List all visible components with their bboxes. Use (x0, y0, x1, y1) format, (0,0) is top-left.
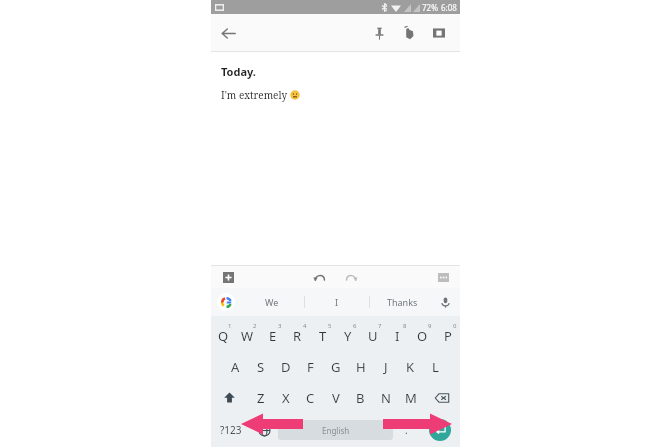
staticText: X (282, 389, 290, 407)
staticText: H (356, 358, 366, 376)
button[interactable]: M (398, 382, 423, 413)
staticText: 9 (428, 322, 432, 330)
button[interactable]: O (410, 320, 435, 351)
button[interactable]: Thanks (370, 288, 434, 316)
button[interactable]: . (393, 413, 420, 447)
staticText: C (306, 389, 315, 407)
button[interactable]: I (305, 288, 369, 316)
button[interactable]: K (398, 351, 423, 382)
button[interactable]: Back (211, 16, 245, 50)
button[interactable]: F (298, 351, 323, 382)
staticText: V (332, 389, 340, 407)
button[interactable]: B (348, 382, 373, 413)
button[interactable]: Backspace (423, 382, 460, 413)
staticText: 72% (422, 2, 438, 13)
staticText: Q (218, 327, 229, 345)
staticText: W (241, 327, 254, 345)
button[interactable]: Handwriting (394, 18, 424, 48)
staticText: P (444, 327, 452, 345)
staticText: S (257, 358, 265, 376)
staticText: English (322, 425, 350, 436)
staticText: Y (344, 327, 352, 345)
staticText: N (381, 389, 391, 407)
button[interactable]: E (260, 320, 285, 351)
button[interactable]: Q (211, 320, 235, 351)
button[interactable]: G (323, 351, 348, 382)
staticText: I (335, 296, 339, 308)
button[interactable]: D (273, 351, 298, 382)
button[interactable]: N (373, 382, 398, 413)
staticText: Today. (221, 64, 256, 79)
staticText: E (269, 327, 277, 345)
button[interactable]: Redo (340, 266, 362, 288)
staticText: G (331, 358, 341, 376)
button[interactable]: C (298, 382, 323, 413)
button[interactable]: U (360, 320, 385, 351)
button[interactable]: English (278, 420, 393, 440)
staticText: 3 (278, 322, 282, 330)
staticText: We (265, 296, 279, 308)
button[interactable]: I (385, 320, 410, 351)
button[interactable]: A (223, 351, 248, 382)
staticText: 6 (353, 322, 357, 330)
button[interactable]: V (323, 382, 348, 413)
button[interactable]: We (239, 288, 304, 316)
staticText: U (368, 327, 378, 345)
staticText: I (395, 327, 400, 345)
button[interactable]: T (310, 320, 335, 351)
staticText: 0 (453, 322, 457, 330)
staticText: R (293, 327, 302, 345)
button[interactable]: Change language (251, 413, 278, 447)
staticText: 6:08 (441, 2, 457, 13)
button[interactable]: Share (424, 18, 454, 48)
staticText: ?123 (220, 423, 242, 437)
button[interactable]: X (273, 382, 298, 413)
staticText: . (405, 423, 408, 437)
button[interactable]: Y (335, 320, 360, 351)
staticText: 7 (378, 322, 382, 330)
button[interactable]: Z (248, 382, 273, 413)
staticText: I'm extremely (221, 88, 290, 102)
button[interactable]: ?123 (211, 413, 251, 447)
staticText: 8 (403, 322, 407, 330)
button[interactable]: Voice input (434, 291, 456, 313)
button[interactable]: Undo (308, 266, 330, 288)
staticText: F (307, 358, 314, 376)
staticText: 2 (253, 322, 257, 330)
button[interactable]: J (373, 351, 398, 382)
staticText: T (319, 327, 327, 345)
staticText: Z (257, 389, 265, 407)
button[interactable]: Pin (364, 18, 394, 48)
button[interactable]: H (348, 351, 373, 382)
staticText: O (417, 327, 428, 345)
button[interactable]: P (435, 320, 460, 351)
button[interactable]: Google (217, 293, 235, 311)
staticText: 4 (303, 322, 307, 330)
button[interactable]: R (285, 320, 310, 351)
staticText: 5 (328, 322, 332, 330)
staticText: A (231, 358, 240, 376)
staticText: J (384, 358, 388, 376)
button[interactable]: S (248, 351, 273, 382)
staticText: M (405, 389, 417, 407)
button[interactable]: Enter (429, 419, 451, 441)
staticText: Thanks (387, 296, 418, 308)
button[interactable]: W (235, 320, 260, 351)
staticText: D (281, 358, 291, 376)
button[interactable]: More options (434, 268, 452, 286)
button[interactable]: Shift (211, 382, 248, 413)
staticText: B (356, 389, 365, 407)
staticText: L (432, 358, 439, 376)
staticText: 1 (228, 322, 232, 330)
button[interactable]: L (423, 351, 448, 382)
staticText: K (406, 358, 415, 376)
button[interactable]: Add (219, 268, 237, 286)
